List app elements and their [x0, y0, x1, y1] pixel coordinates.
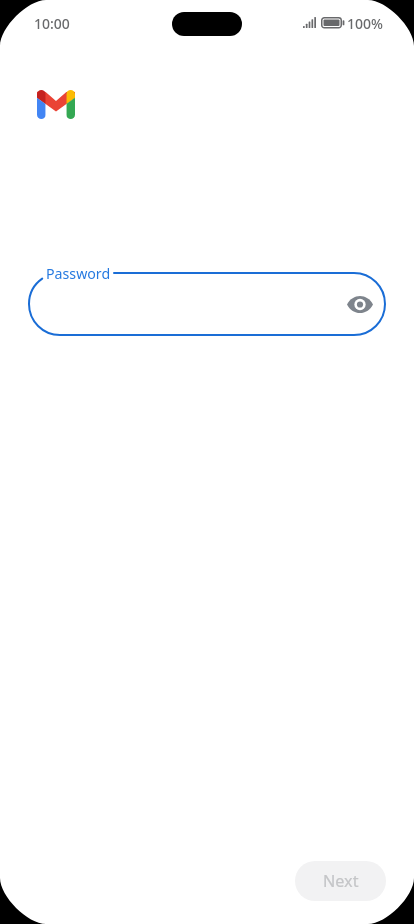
- staticText: 100%: [347, 14, 383, 33]
- button[interactable]: Show password: [341, 286, 378, 323]
- button[interactable]: Password: [29, 273, 385, 335]
- staticText: Password: [46, 264, 111, 283]
- staticText: Next: [323, 870, 359, 892]
- staticText: 10:00: [34, 14, 70, 33]
- button[interactable]: Next: [295, 861, 386, 901]
